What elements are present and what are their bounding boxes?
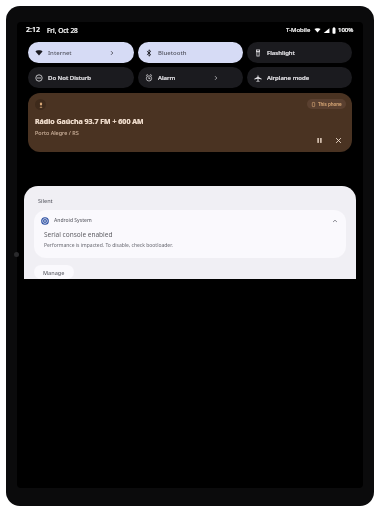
button[interactable]: Manage [34,265,74,279]
staticText: 100% [338,26,354,34]
button[interactable]: This phone [307,99,346,109]
staticText: T-Mobile [286,26,311,34]
button[interactable]: Internet [28,42,134,63]
button[interactable]: Airplane mode [247,67,352,88]
staticText: Alarm [158,74,176,82]
staticText: Bluetooth [158,49,187,57]
staticText: This phone [318,101,342,107]
staticText: Do Not Disturb [48,74,92,82]
button[interactable]: Close [332,134,345,147]
staticText: Porto Alegre / RS [35,129,79,136]
staticText: Internet [48,49,72,57]
staticText: Airplane mode [267,74,310,82]
staticText: Rádio Gaúcha 93.7 FM + 600 AM [35,117,144,127]
button[interactable]: Flashlight [247,42,352,63]
button[interactable]: Do Not Disturb [28,67,134,88]
button[interactable]: Android System [34,210,346,258]
staticText: Manage [43,269,65,276]
button[interactable]: Collapse [330,216,339,225]
button[interactable]: Bluetooth [138,42,243,63]
staticText: Android System [54,217,92,224]
staticText: Flashlight [267,49,295,57]
button[interactable]: This phone [28,93,352,152]
button[interactable]: Alarm [138,67,243,88]
staticText: Performance is impacted. To disable, che… [44,242,173,249]
button[interactable]: Pause [313,134,326,147]
staticText: Silent [38,197,53,204]
staticText: Fri, Oct 28 [47,26,78,35]
staticText: Serial console enabled [44,230,113,239]
staticText: 2:12 [26,25,40,35]
